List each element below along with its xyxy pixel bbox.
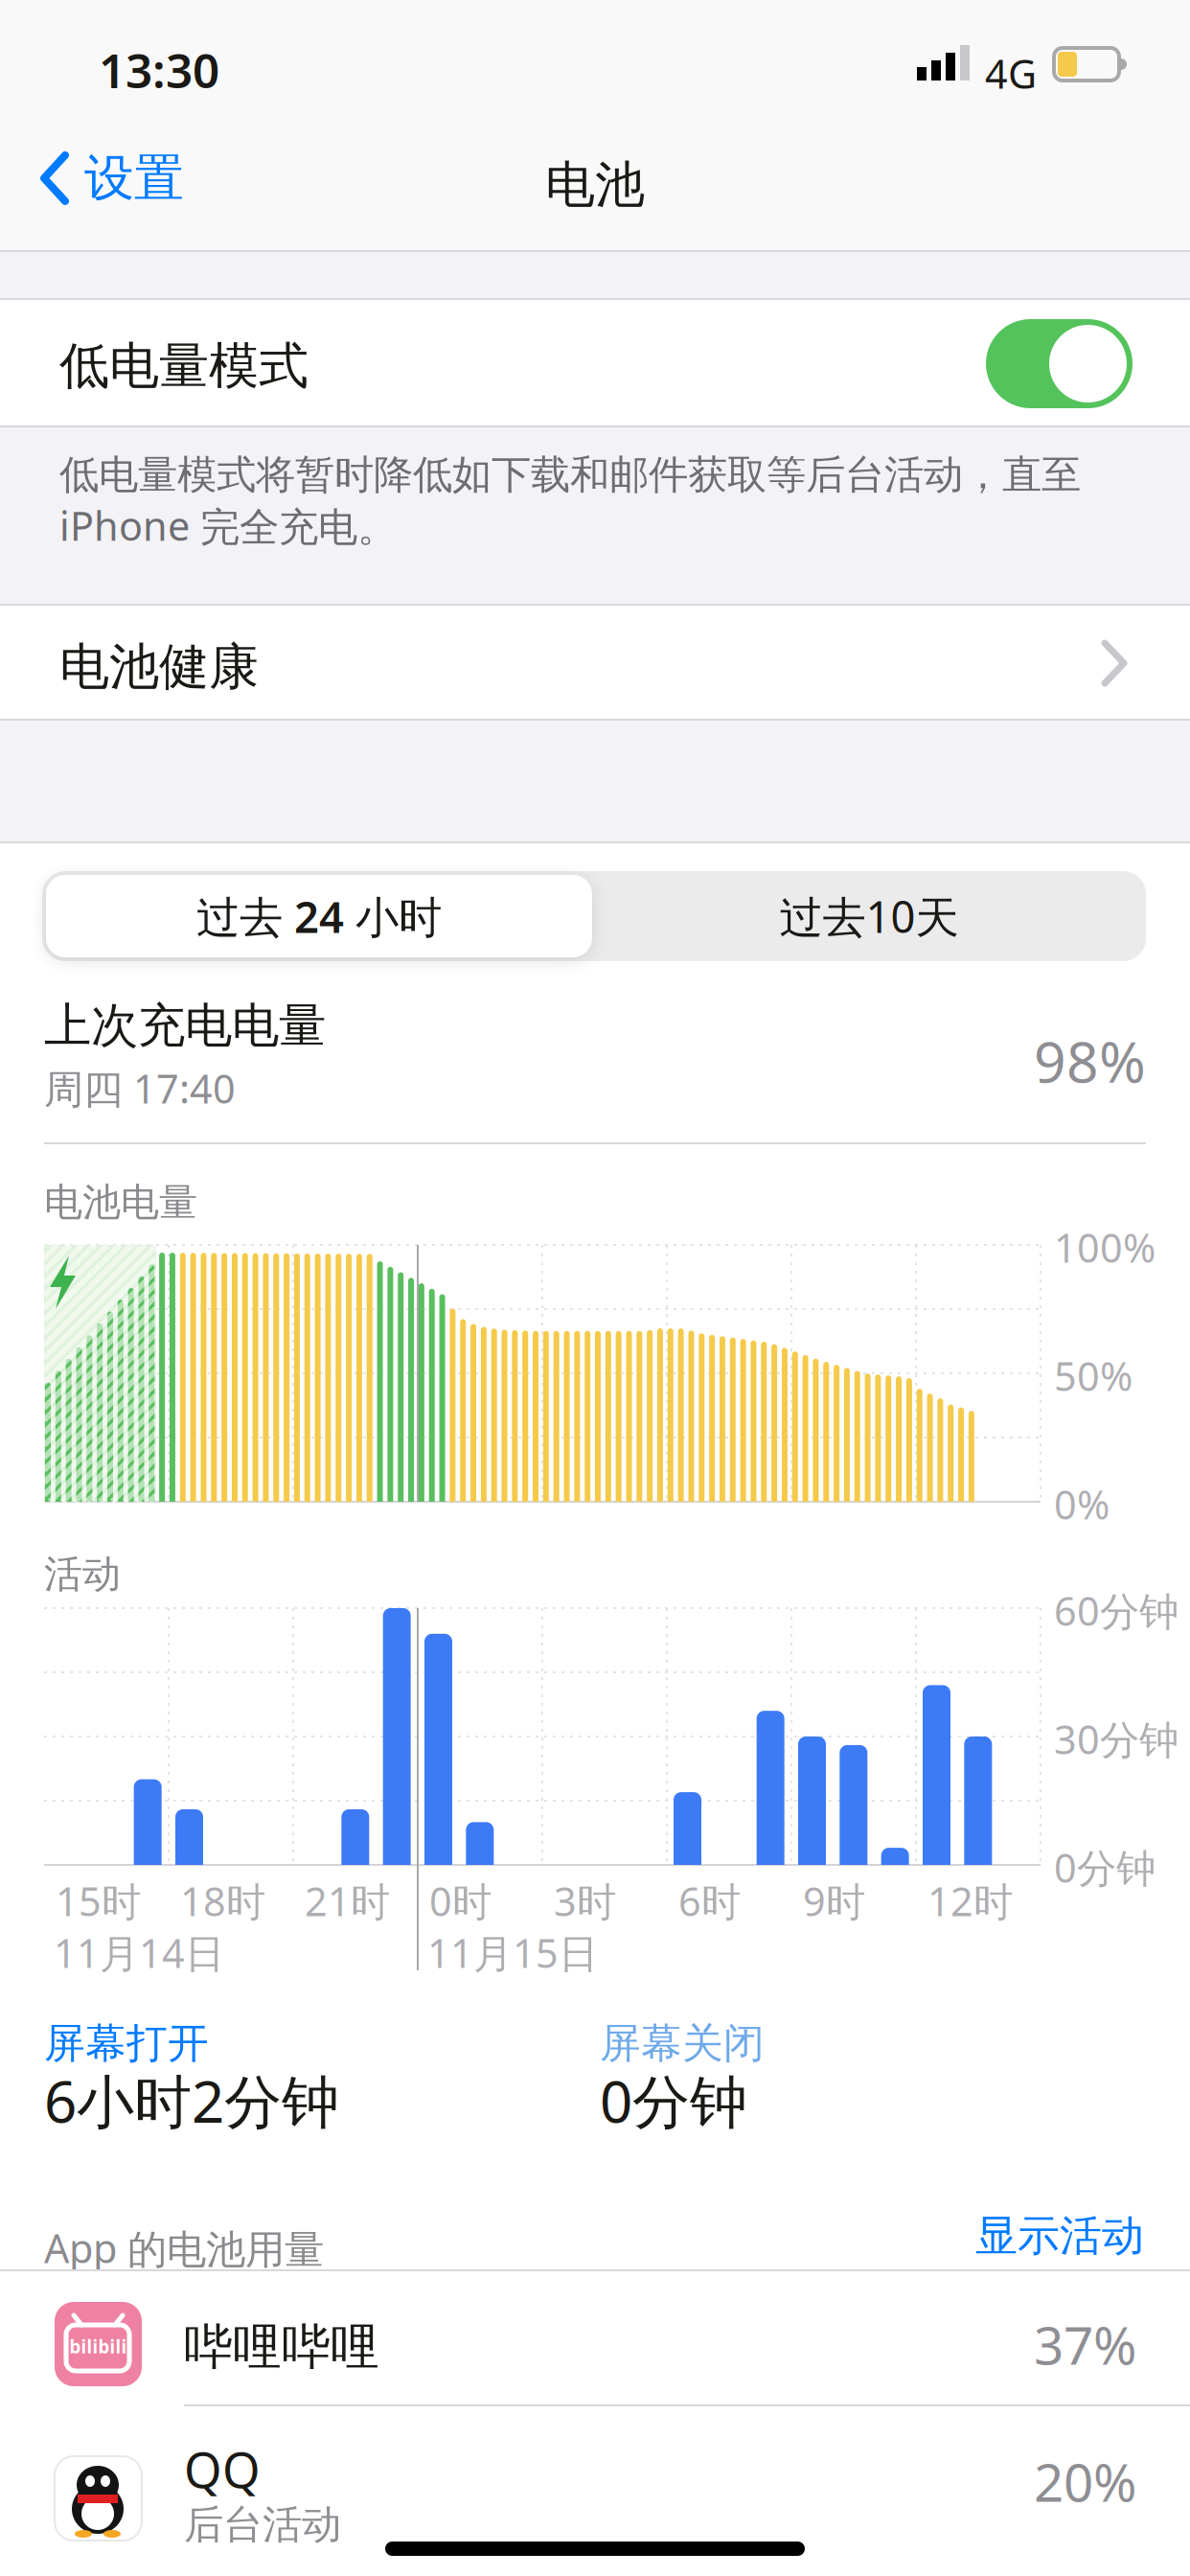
staticText: 0分钟	[1054, 1841, 1156, 1894]
button[interactable]: 低电量模式	[986, 319, 1133, 408]
staticText: 18时	[180, 1874, 265, 1927]
staticText: 设置	[84, 148, 184, 209]
staticText: 12时	[927, 1874, 1013, 1927]
staticText: 11月14日	[54, 1926, 224, 1979]
staticText: 0时	[429, 1874, 492, 1927]
staticText: 0分钟	[600, 2062, 747, 2139]
staticText: 电池电量	[44, 1179, 197, 1226]
staticText: 哔哩哔哩	[184, 2317, 379, 2377]
staticText: 6时	[678, 1874, 741, 1927]
staticText: bilibili	[69, 2334, 127, 2358]
button[interactable]: 设置	[40, 148, 184, 209]
staticText: 低电量模式	[59, 335, 309, 397]
staticText: 屏幕打开	[44, 2018, 209, 2068]
staticText: 屏幕关闭	[600, 2018, 765, 2068]
staticText: 电池健康	[59, 636, 259, 698]
staticText: 过去 24 小时	[196, 887, 442, 945]
staticText: 过去10天	[779, 887, 959, 945]
staticText: 0%	[1054, 1478, 1110, 1530]
staticText: 13:30	[99, 38, 219, 101]
staticText: 4G	[985, 47, 1037, 100]
staticText: 30分钟	[1054, 1713, 1179, 1765]
staticText: 98%	[1034, 1023, 1146, 1098]
staticText: 37%	[1034, 2310, 1136, 2379]
staticText: 15时	[56, 1874, 141, 1927]
staticText: 20%	[1034, 2447, 1136, 2516]
staticText: 周四 17:40	[44, 1062, 236, 1114]
staticText: 3时	[554, 1874, 616, 1927]
staticText: 21时	[305, 1874, 390, 1927]
button[interactable]: bilibili	[0, 2271, 1190, 2576]
staticText: 上次充电电量	[44, 997, 326, 1055]
staticText: 60分钟	[1054, 1584, 1179, 1637]
button[interactable]: 电池健康	[0, 606, 1190, 719]
button[interactable]: 显示活动	[975, 2210, 1144, 2262]
staticText: 50%	[1054, 1349, 1133, 1402]
staticText: App 的电池用量	[44, 2221, 324, 2274]
staticText: QQ	[184, 2437, 261, 2502]
button[interactable]: 过去 24 小时	[46, 875, 592, 957]
staticText: 显示活动	[975, 2210, 1144, 2262]
button[interactable]: 过去10天	[596, 875, 1142, 957]
button[interactable]: QQ	[0, 2406, 1190, 2576]
staticText: 6小时2分钟	[44, 2062, 339, 2139]
staticText: 100%	[1054, 1221, 1156, 1274]
staticText: 低电量模式将暂时降低如下载和邮件获取等后台活动，直至 iPhone 完全充电。	[59, 450, 1081, 552]
staticText: 9时	[803, 1874, 865, 1927]
staticText: 活动	[44, 1551, 121, 1598]
staticText: 11月15日	[427, 1926, 598, 1979]
staticText: 电池	[545, 154, 645, 216]
staticText: 后台活动	[184, 2500, 341, 2549]
